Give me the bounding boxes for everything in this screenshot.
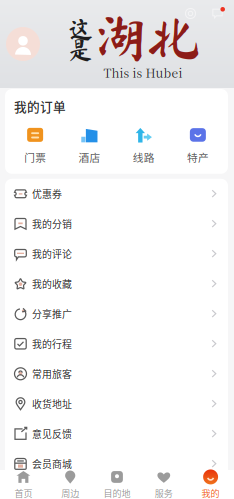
button[interactable]: 会员商城 xyxy=(5,449,228,479)
button[interactable]: 服务 xyxy=(140,465,187,499)
staticText: 周边 xyxy=(61,486,79,499)
staticText: 这 xyxy=(68,16,93,42)
staticText: 门票 xyxy=(24,149,46,165)
button[interactable]: 优惠券 xyxy=(5,179,228,209)
button[interactable]: Messages xyxy=(208,3,229,24)
button[interactable]: 我的行程 xyxy=(5,329,228,359)
staticText: 会员商城 xyxy=(32,457,72,471)
button[interactable]: 线路 xyxy=(116,125,171,165)
staticText: 常用旅客 xyxy=(32,367,72,381)
staticText: 是 xyxy=(68,37,93,62)
button[interactable]: 我的 xyxy=(187,465,234,499)
staticText: 我的订单 xyxy=(14,97,66,115)
staticText: 特产 xyxy=(187,149,209,165)
button[interactable]: 收货地址 xyxy=(5,389,228,419)
staticText: 服务 xyxy=(155,486,173,499)
staticText: 我的 xyxy=(202,486,220,499)
button[interactable]: 我的评论 xyxy=(5,239,228,269)
staticText: 意见反馈 xyxy=(32,427,72,441)
button[interactable]: 酒店 xyxy=(62,125,116,165)
staticText: This is Hubei xyxy=(103,64,182,81)
staticText: 目的地 xyxy=(103,486,130,499)
staticText: 我的行程 xyxy=(32,337,72,351)
button[interactable]: 常用旅客 xyxy=(5,359,228,389)
staticText: 我的收藏 xyxy=(32,277,72,291)
button[interactable]: 特产 xyxy=(171,125,225,165)
staticText: 酒店 xyxy=(78,149,100,165)
button[interactable]: 门票 xyxy=(8,125,62,165)
button[interactable]: 周边 xyxy=(47,465,94,499)
button[interactable]: 首页 xyxy=(0,465,47,499)
staticText: 我的评论 xyxy=(32,247,72,261)
staticText: 湖北 xyxy=(94,11,200,64)
staticText: 收货地址 xyxy=(32,397,72,411)
staticText: 线路 xyxy=(133,149,155,165)
staticText: 首页 xyxy=(14,486,32,499)
staticText: 分享推广 xyxy=(32,307,72,321)
button[interactable]: Settings xyxy=(181,4,200,23)
button[interactable]: 目的地 xyxy=(94,465,140,499)
staticText: 我的分销 xyxy=(32,217,72,231)
button[interactable]: 意见反馈 xyxy=(5,419,228,449)
staticText: 优惠券 xyxy=(32,187,62,201)
button[interactable]: 我的收藏 xyxy=(5,269,228,299)
button[interactable]: 分享推广 xyxy=(5,299,228,329)
button[interactable]: 我的分销 xyxy=(5,209,228,239)
